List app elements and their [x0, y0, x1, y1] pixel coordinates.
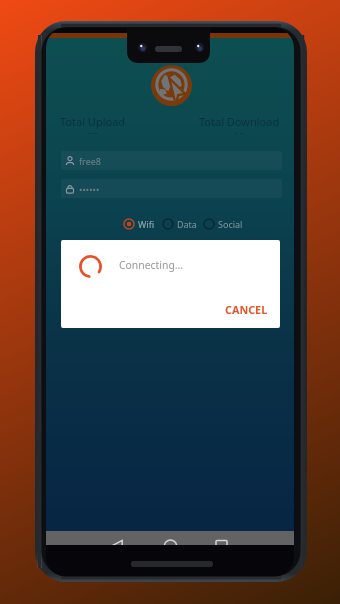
staticText: Wifi — [138, 218, 155, 230]
staticText: 0B — [234, 130, 246, 134]
staticText: Connecting... — [119, 258, 184, 272]
staticText: •••••• — [79, 183, 100, 195]
staticText: Social — [218, 218, 243, 230]
staticText: Total Upload — [60, 114, 126, 129]
staticText: CANCEL — [225, 302, 268, 317]
button[interactable]: Social — [202, 216, 244, 232]
staticText: Data — [177, 218, 197, 230]
button[interactable]: Recent apps — [211, 531, 294, 545]
button[interactable]: Data — [161, 216, 198, 232]
button[interactable]: CANCEL — [217, 296, 276, 323]
staticText: Total Download — [199, 114, 280, 129]
button[interactable]: free8 — [61, 151, 282, 170]
staticText: free8 — [79, 155, 101, 167]
button[interactable]: •••••• — [61, 179, 282, 198]
staticText: 0B — [87, 130, 99, 134]
button[interactable]: Wifi — [122, 216, 156, 232]
button[interactable]: Back — [46, 531, 128, 545]
button[interactable]: Home — [128, 531, 211, 545]
button[interactable]: App logo — [151, 65, 192, 106]
